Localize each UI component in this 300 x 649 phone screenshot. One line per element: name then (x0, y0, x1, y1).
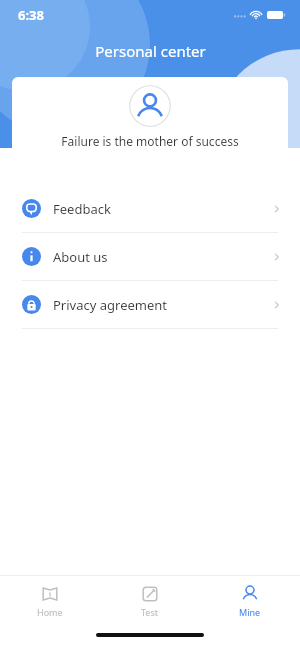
staticText: Feedback (53, 200, 111, 218)
staticText: Privacy agreement (53, 296, 168, 314)
staticText: Personal center (95, 41, 206, 61)
button[interactable]: About us (0, 233, 300, 280)
staticText: Failure is the mother of success (61, 133, 239, 149)
staticText: Mine (239, 606, 261, 618)
button[interactable]: Failure is the mother of success (12, 77, 288, 157)
button[interactable]: Home (0, 576, 100, 626)
button[interactable]: Privacy agreement (0, 281, 300, 328)
staticText: Home (37, 606, 63, 618)
staticText: 6:38 (18, 6, 44, 24)
button[interactable]: Mine (200, 576, 300, 626)
staticText: Test (141, 606, 159, 618)
staticText: About us (53, 248, 108, 266)
button[interactable]: Test (100, 576, 200, 626)
button[interactable]: Feedback (0, 185, 300, 232)
